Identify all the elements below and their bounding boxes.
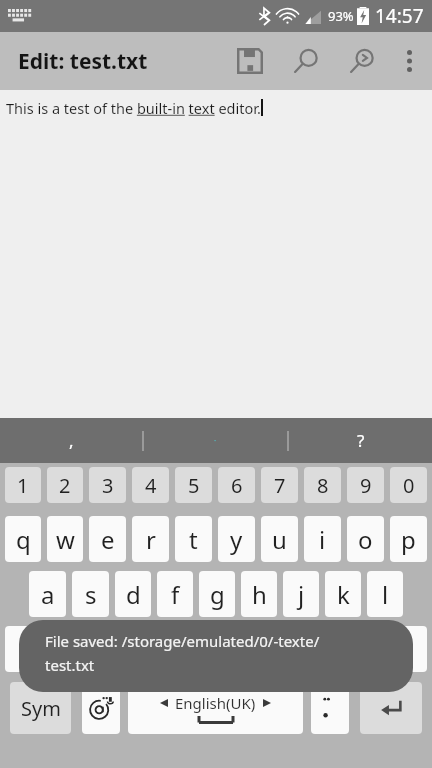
button[interactable]: s — [72, 571, 109, 617]
staticText: q — [16, 523, 31, 556]
button[interactable]: h — [241, 571, 277, 617]
button[interactable]: q — [5, 516, 41, 562]
button[interactable]: r — [132, 516, 169, 562]
button[interactable]: k — [325, 571, 361, 617]
button[interactable]: v — [197, 626, 235, 672]
staticText: g — [210, 578, 225, 611]
button[interactable]: t — [175, 516, 212, 562]
staticText: e — [101, 523, 115, 556]
button[interactable]: 3 — [89, 467, 126, 503]
button[interactable]: e — [89, 516, 126, 562]
button[interactable]: w — [47, 516, 83, 562]
staticText: 7 — [274, 472, 286, 499]
button[interactable]: 4 — [132, 467, 169, 503]
button[interactable]: n — [285, 626, 323, 672]
staticText: 6 — [231, 472, 243, 499]
staticText: f — [171, 578, 180, 611]
button[interactable]: d — [115, 571, 151, 617]
staticText: n — [297, 633, 312, 666]
staticText: a — [41, 578, 55, 611]
button[interactable]: 7 — [261, 467, 298, 503]
button[interactable]: 8 — [304, 467, 341, 503]
staticText: 4 — [145, 472, 157, 499]
staticText: 0 — [403, 472, 415, 499]
button[interactable]: 6 — [218, 467, 255, 503]
button[interactable]: More options — [390, 32, 428, 90]
staticText: t — [189, 523, 198, 556]
staticText: u — [272, 523, 287, 556]
staticText: x — [122, 633, 135, 666]
staticText: 93% — [328, 7, 354, 25]
button[interactable]: l — [367, 571, 403, 617]
button[interactable]: z — [65, 626, 103, 672]
button[interactable]: Backspace — [373, 626, 427, 672]
staticText: English(UK) — [175, 693, 256, 713]
staticText: File saved: /storage/emulated/0/-texte/ — [45, 631, 320, 651]
button[interactable]: x — [109, 626, 147, 672]
button[interactable]: p — [390, 516, 427, 562]
staticText: 14:57 — [375, 3, 424, 29]
staticText: ? — [357, 429, 365, 452]
button[interactable]: , — [0, 418, 142, 463]
button[interactable]: o — [347, 516, 384, 562]
button[interactable]: Shift — [5, 626, 59, 672]
staticText: y — [230, 523, 243, 556]
staticText: This is a test of the built-in text edit… — [6, 98, 261, 118]
button[interactable]: Space, English(UK) — [128, 682, 303, 734]
staticText: j — [298, 578, 305, 611]
button[interactable]: Enter — [360, 682, 422, 734]
staticText: 2 — [59, 472, 71, 499]
staticText: c — [166, 633, 178, 666]
button[interactable]: ? — [289, 418, 432, 463]
button[interactable]: u — [261, 516, 298, 562]
button[interactable]: Search — [278, 32, 334, 90]
staticText: 1 — [17, 472, 29, 499]
button[interactable]: 9 — [347, 467, 384, 503]
staticText: w — [56, 523, 75, 556]
button[interactable]: Sym — [10, 682, 71, 734]
staticText: Edit: test.txt — [18, 47, 148, 76]
button[interactable]: Emoji and voice input — [82, 682, 120, 734]
staticText: b — [253, 633, 268, 666]
button[interactable]: 1 — [5, 467, 41, 503]
button[interactable]: 2 — [47, 467, 83, 503]
staticText: , — [69, 429, 74, 452]
staticText: v — [210, 633, 223, 666]
button[interactable]: c — [153, 626, 191, 672]
staticText: s — [85, 578, 97, 611]
staticText: z — [78, 633, 90, 666]
staticText: Sym — [21, 695, 61, 722]
staticText: r — [146, 523, 156, 556]
button[interactable]: Save — [222, 32, 278, 90]
staticText: p — [401, 523, 416, 556]
staticText: k — [337, 578, 350, 611]
staticText: d — [126, 578, 141, 611]
button[interactable]: g — [199, 571, 235, 617]
staticText: test.txt — [45, 655, 95, 675]
staticText: l — [382, 578, 389, 611]
staticText: 3 — [102, 472, 114, 499]
button[interactable]: j — [283, 571, 319, 617]
staticText: i — [319, 523, 326, 556]
button[interactable]: 5 — [175, 467, 212, 503]
button[interactable]: 0 — [390, 467, 427, 503]
staticText: 8 — [317, 472, 329, 499]
button[interactable]: Punctuation — [311, 682, 349, 734]
button[interactable]: f — [157, 571, 193, 617]
button[interactable]: y — [218, 516, 255, 562]
button[interactable]: i — [304, 516, 341, 562]
staticText: h — [252, 578, 267, 611]
button[interactable]: a — [29, 571, 66, 617]
staticText: 9 — [360, 472, 372, 499]
button[interactable]: Search next — [334, 32, 390, 90]
button[interactable]: b — [241, 626, 279, 672]
staticText: 5 — [188, 472, 200, 499]
staticText: o — [358, 523, 373, 556]
staticText: · — [214, 435, 217, 446]
